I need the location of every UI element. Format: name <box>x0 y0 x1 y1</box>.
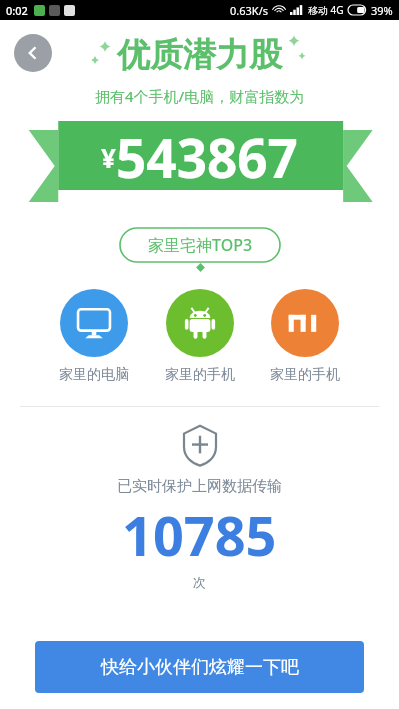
staticText: 家里的手机 <box>270 366 340 384</box>
staticText: 优质潜力股 <box>117 34 282 76</box>
staticText: 拥有4个手机/电脑，财富指数为 <box>95 86 305 106</box>
staticText: 家里的电脑 <box>59 366 129 384</box>
button[interactable]: 家里的电脑 <box>59 289 129 384</box>
staticText: 已实时保护上网数据传输 <box>117 477 282 496</box>
staticText: 0:02 <box>6 3 28 18</box>
staticText: 543867 <box>116 121 298 193</box>
staticText: 39% <box>371 3 393 18</box>
staticText: 家里的手机 <box>165 366 235 384</box>
staticText: 快给小伙伴们炫耀一下吧 <box>101 656 299 679</box>
button[interactable]: 家里的手机 <box>270 289 340 384</box>
button[interactable]: 快给小伙伴们炫耀一下吧 <box>35 641 364 693</box>
staticText: ¥ <box>101 140 116 175</box>
staticText: 家里宅神TOP3 <box>148 234 253 256</box>
staticText: 0.63K/s <box>230 3 268 18</box>
button[interactable]: Back <box>14 34 52 72</box>
button[interactable]: 家里的手机 <box>165 289 235 384</box>
button[interactable]: 家里宅神TOP3 <box>120 228 280 262</box>
staticText: 次 <box>193 574 206 590</box>
staticText: 移动 4G <box>308 3 344 17</box>
staticText: 10785 <box>122 498 277 572</box>
